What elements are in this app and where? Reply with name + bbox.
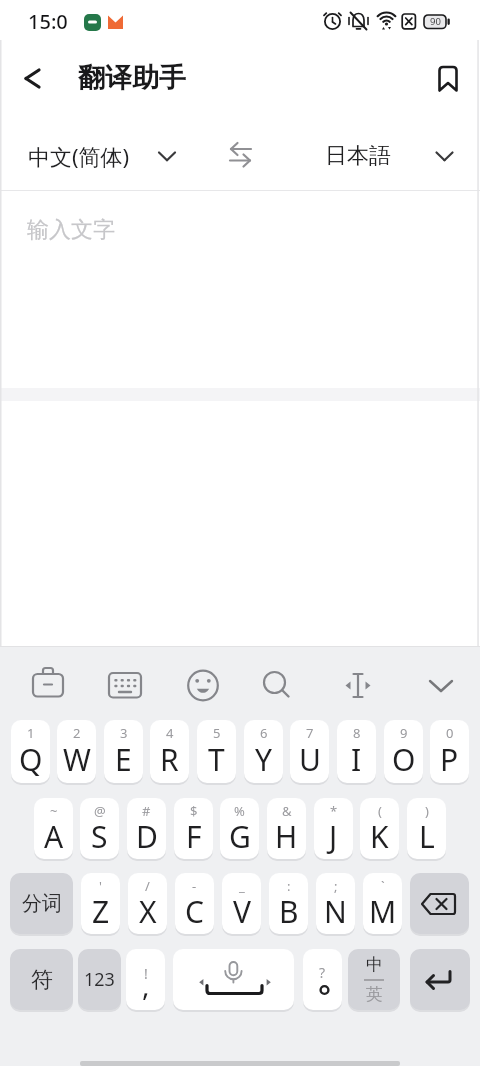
staticText: H (275, 816, 298, 857)
staticText: O (392, 739, 416, 780)
staticText: 1 (27, 724, 35, 742)
button[interactable] (80, 798, 119, 859)
staticText: 翻译助手 (78, 61, 186, 95)
staticText: X (139, 891, 157, 932)
staticText: ? (319, 963, 326, 982)
staticText: R (160, 739, 179, 780)
staticText: # (142, 802, 151, 820)
button[interactable] (16, 658, 80, 712)
staticText: U (299, 739, 321, 780)
staticText: $ (190, 802, 198, 820)
staticText: 分词 (22, 891, 62, 916)
staticText: 9 (400, 724, 408, 742)
button[interactable] (81, 873, 120, 934)
button[interactable] (57, 720, 96, 783)
button[interactable] (78, 949, 121, 1010)
button[interactable] (267, 798, 306, 859)
staticText: 2 (73, 724, 81, 742)
staticText: D (136, 816, 158, 857)
button[interactable] (315, 130, 460, 180)
button[interactable] (316, 873, 355, 934)
button[interactable] (94, 658, 158, 712)
staticText: N (324, 891, 347, 932)
staticText: K (370, 816, 389, 857)
staticText: V (233, 891, 251, 932)
staticText: J (329, 816, 338, 857)
button[interactable] (410, 873, 469, 934)
staticText: Z (92, 891, 110, 932)
button[interactable] (410, 949, 470, 1010)
staticText: 日本語 (325, 142, 391, 170)
button[interactable] (430, 60, 468, 98)
staticText: 8 (353, 724, 361, 742)
button[interactable] (11, 720, 50, 783)
staticText: ! (144, 964, 148, 983)
button[interactable] (269, 873, 308, 934)
button[interactable] (384, 720, 423, 783)
button[interactable] (363, 873, 402, 934)
staticText: W (63, 739, 91, 780)
staticText: A (44, 816, 64, 857)
button[interactable] (126, 949, 165, 1010)
button[interactable] (250, 658, 314, 712)
staticText: 4 (166, 724, 174, 742)
button[interactable] (328, 658, 392, 712)
staticText: Q (19, 739, 43, 780)
button[interactable] (197, 720, 236, 783)
staticText: 6 (260, 724, 268, 742)
button[interactable] (337, 720, 376, 783)
staticText: ) (425, 802, 429, 820)
button[interactable] (220, 798, 259, 859)
button[interactable] (34, 798, 73, 859)
staticText: 123 (84, 967, 115, 992)
button[interactable] (10, 873, 73, 934)
button[interactable] (348, 949, 400, 1010)
staticText: C (185, 891, 204, 932)
button[interactable] (244, 720, 283, 783)
button[interactable] (407, 798, 446, 859)
button[interactable] (225, 135, 257, 175)
staticText: T (208, 739, 225, 780)
staticText: - (192, 877, 197, 895)
staticText: , (142, 966, 150, 1004)
button[interactable] (314, 798, 353, 859)
button[interactable] (222, 873, 261, 934)
staticText: 输入文字 (27, 216, 115, 244)
button[interactable] (150, 720, 189, 783)
button[interactable] (430, 720, 469, 783)
button[interactable] (406, 658, 470, 712)
staticText: 5 (213, 724, 221, 742)
staticText: 符 (31, 966, 53, 994)
button[interactable] (174, 798, 213, 859)
button[interactable] (173, 949, 294, 1010)
staticText: & (282, 802, 292, 820)
button[interactable] (14, 60, 52, 98)
button[interactable] (127, 798, 166, 859)
staticText: 0 (446, 724, 454, 742)
staticText: 中 (366, 954, 383, 975)
button[interactable] (0, 191, 480, 388)
button[interactable] (128, 873, 167, 934)
button[interactable] (104, 720, 143, 783)
button[interactable] (290, 720, 329, 783)
button[interactable] (303, 949, 342, 1010)
staticText: 7 (306, 724, 314, 742)
staticText: M (369, 891, 397, 932)
staticText: F (186, 816, 202, 857)
button[interactable] (175, 873, 214, 934)
staticText: ( (378, 802, 382, 820)
staticText: 90 (430, 15, 441, 28)
staticText: I (351, 739, 362, 780)
button[interactable] (172, 658, 236, 712)
button[interactable] (20, 130, 185, 180)
staticText: L (419, 816, 435, 857)
staticText: _ (239, 877, 245, 895)
button[interactable] (10, 949, 73, 1010)
staticText: E (115, 739, 132, 780)
staticText: G (229, 816, 251, 857)
staticText: / (145, 877, 150, 895)
staticText: % (234, 802, 245, 820)
staticText: ` (381, 877, 385, 895)
staticText: ; (334, 877, 338, 895)
button[interactable] (360, 798, 399, 859)
